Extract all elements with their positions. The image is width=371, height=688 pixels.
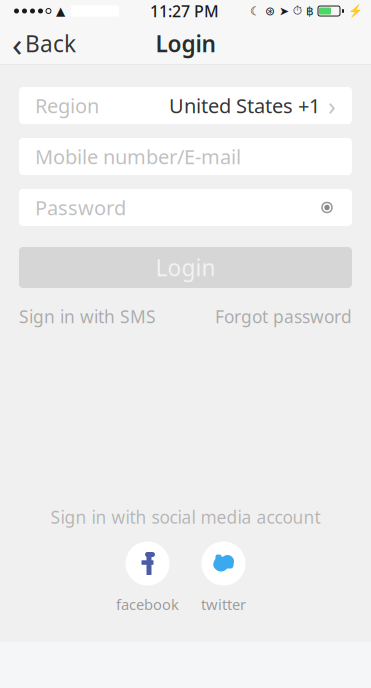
button[interactable]: Region (19, 87, 352, 124)
staticText: Sign in with SMS (19, 305, 156, 328)
button[interactable]: Password (19, 189, 352, 226)
staticText: twitter (201, 594, 246, 614)
staticText: ⚡ (348, 4, 363, 18)
button[interactable]: twitter (185, 541, 261, 614)
button[interactable]: facebook (109, 541, 185, 614)
staticText: 11:27 PM (150, 0, 219, 22)
staticText: ➤ (279, 4, 289, 18)
staticText: United States +1 (169, 92, 320, 119)
staticText: ▲ (56, 4, 65, 18)
staticText: Mobile number/E-mail (35, 143, 241, 170)
staticText: ‹ (12, 21, 22, 66)
staticText: ฿ (306, 4, 314, 18)
staticText: facebook (116, 594, 179, 614)
staticText: Login (155, 252, 215, 282)
button[interactable]: Mobile number/E-mail (19, 138, 352, 175)
staticText: ⊛ (265, 4, 275, 18)
button[interactable]: Sign in with SMS (19, 301, 156, 332)
button[interactable]: Login (19, 247, 352, 288)
button[interactable]: ‹ (0, 22, 88, 65)
button[interactable]: Forgot password (215, 301, 352, 332)
staticText: Forgot password (215, 305, 352, 328)
staticText: › (328, 89, 336, 122)
staticText: Back (25, 28, 76, 58)
staticText: Region (35, 92, 99, 119)
staticText: Login (155, 28, 215, 58)
staticText: ☾ (250, 4, 261, 18)
staticText: Sign in with social media account (50, 505, 320, 528)
staticText: ⏱ (293, 5, 302, 17)
staticText: Password (35, 194, 126, 221)
